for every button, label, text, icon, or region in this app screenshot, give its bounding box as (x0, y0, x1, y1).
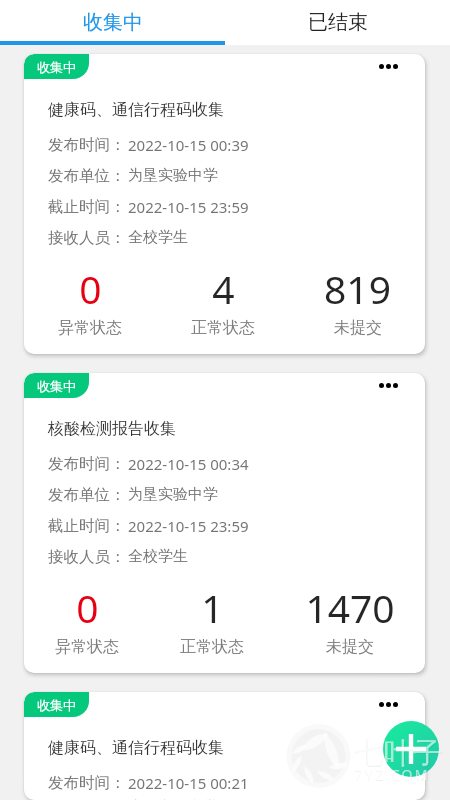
staticText: 异常状态 (55, 637, 119, 657)
button[interactable]: More options (379, 64, 398, 69)
staticText: 发布时间： (48, 454, 126, 474)
staticText: 健康码、通信行程码收集 (48, 100, 224, 120)
button[interactable]: More options (379, 383, 398, 388)
staticText: 七叶子 (354, 735, 444, 773)
button[interactable]: More options (379, 702, 398, 707)
staticText: 819 (324, 262, 391, 315)
staticText: 收集中 (83, 10, 143, 35)
staticText: 2022-10-15 00:39 (128, 135, 249, 155)
staticText: 发布时间： (48, 135, 126, 155)
staticText: 2022-10-15 23:59 (128, 197, 249, 217)
staticText: 1 (201, 581, 224, 634)
staticText: 发布时间： (48, 773, 126, 793)
staticText: 核酸检测报告收集 (48, 419, 176, 439)
staticText: 2022-10-15 00:21 (128, 773, 249, 793)
staticText: 截止时间： (48, 516, 126, 536)
button[interactable]: 收集中 (0, 0, 225, 45)
staticText: 异常状态 (58, 318, 122, 338)
button[interactable]: 已结束 (225, 0, 450, 45)
staticText: 为垦实验中学 (128, 485, 218, 504)
staticText: 全校学生 (128, 547, 188, 566)
staticText: 1470 (305, 581, 395, 634)
button[interactable]: 收集中 (24, 54, 425, 354)
staticText: 已结束 (308, 10, 368, 35)
staticText: 正常状态 (191, 318, 255, 338)
staticText: 7YZ.COM (355, 765, 430, 784)
staticText: 正常状态 (180, 637, 244, 657)
staticText: 全校学生 (128, 228, 188, 247)
staticText: 为垦实验中学 (128, 166, 218, 185)
staticText: 0 (79, 262, 102, 315)
staticText: 2022-10-15 23:59 (128, 516, 249, 536)
staticText: 4 (212, 262, 235, 315)
staticText: 2022-10-15 00:34 (128, 454, 249, 474)
staticText: 收集中 (37, 697, 76, 713)
staticText: 截止时间： (48, 197, 126, 217)
staticText: 收集中 (37, 59, 76, 75)
button[interactable]: 收集中 (24, 373, 425, 673)
staticText: 收集中 (37, 378, 76, 394)
staticText: 接收人员： (48, 547, 126, 567)
staticText: 未提交 (326, 637, 374, 657)
staticText: 未提交 (334, 318, 382, 338)
button[interactable]: Add (383, 721, 439, 777)
button[interactable]: 收集中 (24, 692, 425, 800)
staticText: 发布单位： (48, 485, 126, 505)
staticText: 接收人员： (48, 228, 126, 248)
staticText: 发布单位： (48, 166, 126, 186)
staticText: 七叶子 (355, 735, 442, 772)
staticText: 0 (76, 581, 99, 634)
staticText: 健康码、通信行程码收集 (48, 738, 224, 758)
staticText: 为垦实验中学 (128, 798, 218, 800)
staticText: 7YZ.COM (354, 765, 432, 785)
